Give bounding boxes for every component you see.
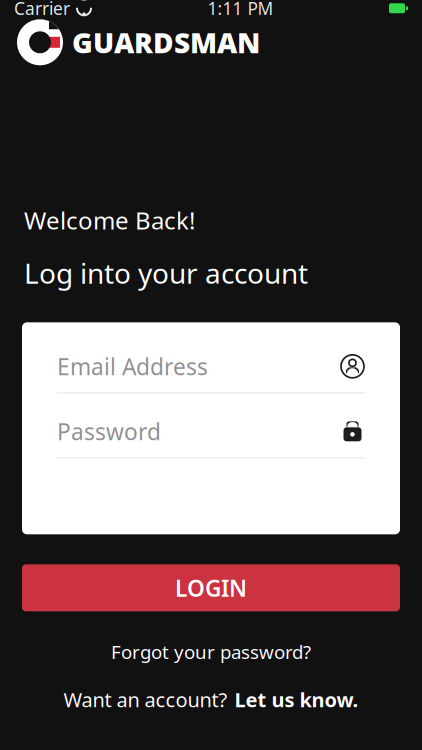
staticText: Forgot your password? xyxy=(111,639,311,664)
staticText: Carrier xyxy=(14,0,70,20)
staticText: Want an account? xyxy=(63,686,227,713)
staticText: Password xyxy=(57,416,161,446)
staticText: 1:11 PM xyxy=(207,0,273,20)
staticText: Email Address xyxy=(57,351,208,381)
staticText: GUARDSMAN xyxy=(72,24,260,61)
staticText: Log into your account xyxy=(24,254,308,291)
staticText: Welcome Back! xyxy=(24,204,195,236)
staticText: Let us know. xyxy=(234,686,358,713)
button[interactable]: Want an account? xyxy=(49,678,372,721)
staticText: LOGIN xyxy=(175,573,247,603)
button[interactable]: LOGIN xyxy=(22,564,400,611)
button[interactable]: Forgot your password? xyxy=(97,633,325,670)
